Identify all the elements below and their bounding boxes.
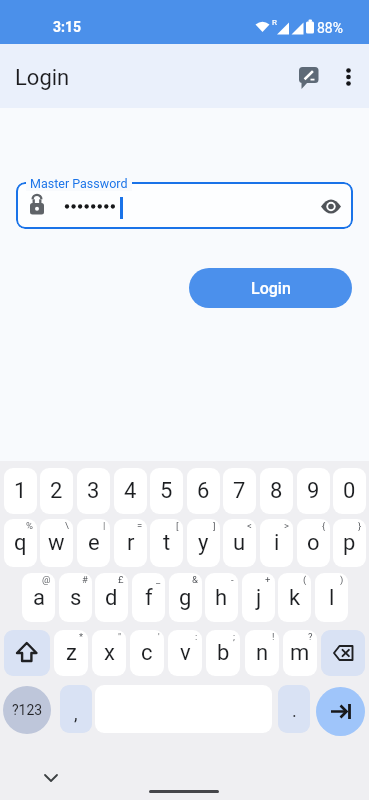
- button[interactable]: r: [114, 519, 147, 567]
- staticText: 3:15: [53, 19, 82, 35]
- button[interactable]: 8: [260, 468, 293, 514]
- button[interactable]: b: [206, 630, 240, 676]
- button[interactable]: w: [40, 519, 73, 567]
- button[interactable]: s: [59, 573, 92, 622]
- button[interactable]: 0: [333, 468, 366, 514]
- button[interactable]: 1: [4, 468, 37, 514]
- staticText: d: [105, 585, 118, 611]
- button[interactable]: p: [333, 519, 366, 567]
- button[interactable]: n: [245, 630, 279, 676]
- staticText: p: [343, 530, 356, 556]
- button[interactable]: v: [168, 630, 202, 676]
- button[interactable]: t: [150, 519, 183, 567]
- button[interactable]: .: [278, 685, 310, 733]
- staticText: R: [272, 18, 277, 27]
- staticText: e: [88, 530, 100, 556]
- staticText: Login: [15, 65, 70, 91]
- button[interactable]: z: [54, 630, 88, 676]
- button[interactable]: h: [205, 573, 238, 622]
- staticText: f: [145, 585, 153, 611]
- button[interactable]: 3: [77, 468, 110, 514]
- button[interactable]: 7: [223, 468, 256, 514]
- button[interactable]: k: [278, 573, 311, 622]
- staticText: 1: [14, 478, 27, 504]
- staticText: 5: [160, 478, 173, 504]
- staticText: ;: [233, 631, 236, 642]
- staticText: t: [163, 530, 171, 556]
- staticText: o: [307, 530, 320, 556]
- staticText: 9: [307, 478, 320, 504]
- button[interactable]: q: [4, 519, 37, 567]
- staticText: x: [104, 640, 115, 666]
- button[interactable]: g: [169, 573, 202, 622]
- staticText: ?: [308, 631, 313, 642]
- button[interactable]: a: [22, 573, 55, 622]
- staticText: ?123: [12, 702, 43, 718]
- staticText: y: [198, 530, 209, 556]
- staticText: m: [290, 640, 310, 666]
- staticText: r: [127, 530, 135, 556]
- staticText: 2: [50, 478, 63, 504]
- button[interactable]: ,: [60, 685, 92, 733]
- staticText: n: [256, 640, 269, 666]
- button[interactable]: [317, 194, 345, 219]
- staticText: 88%: [317, 20, 343, 36]
- button[interactable]: [316, 687, 365, 736]
- button[interactable]: f: [132, 573, 165, 622]
- staticText: @: [42, 574, 51, 585]
- staticText: 0: [343, 478, 356, 504]
- staticText: j: [256, 585, 262, 611]
- staticText: w: [48, 530, 65, 556]
- staticText: 4: [124, 478, 137, 504]
- staticText: -: [231, 574, 234, 585]
- staticText: }: [358, 520, 362, 531]
- staticText: g: [179, 585, 192, 611]
- button[interactable]: 6: [187, 468, 220, 514]
- button[interactable]: [4, 630, 50, 676]
- button[interactable]: 5: [150, 468, 183, 514]
- button[interactable]: [41, 768, 61, 784]
- button[interactable]: y: [187, 519, 220, 567]
- staticText: %: [26, 520, 33, 531]
- button[interactable]: l: [315, 573, 348, 622]
- staticText: z: [66, 640, 77, 666]
- staticText: u: [233, 530, 246, 556]
- staticText: Login: [251, 279, 291, 298]
- staticText: b: [217, 640, 230, 666]
- button[interactable]: m: [283, 630, 317, 676]
- button[interactable]: ?123: [3, 686, 51, 734]
- button[interactable]: 2: [40, 468, 73, 514]
- staticText: +: [265, 574, 271, 585]
- button[interactable]: e: [77, 519, 110, 567]
- staticText: &: [192, 574, 198, 585]
- button[interactable]: x: [92, 630, 126, 676]
- button[interactable]: [16, 182, 353, 229]
- staticText: ]: [213, 520, 216, 531]
- button[interactable]: o: [297, 519, 330, 567]
- button[interactable]: j: [242, 573, 275, 622]
- button[interactable]: u: [223, 519, 256, 567]
- staticText: !: [272, 631, 275, 642]
- button[interactable]: [321, 630, 365, 676]
- staticText: h: [215, 585, 228, 611]
- staticText: [: [176, 520, 179, 531]
- button[interactable]: [294, 61, 324, 91]
- staticText: _: [156, 574, 161, 585]
- staticText: 6: [197, 478, 210, 504]
- staticText: ,: [74, 703, 78, 724]
- button[interactable]: d: [95, 573, 128, 622]
- staticText: =: [137, 520, 143, 531]
- button[interactable]: Login: [189, 268, 352, 308]
- staticText: *: [79, 631, 84, 642]
- staticText: a: [33, 585, 45, 611]
- button[interactable]: 4: [114, 468, 147, 514]
- button[interactable]: [338, 62, 359, 90]
- button[interactable]: c: [130, 630, 164, 676]
- staticText: >: [284, 520, 289, 531]
- staticText: c: [141, 640, 153, 666]
- button[interactable]: 9: [297, 468, 330, 514]
- staticText: <: [247, 520, 252, 531]
- staticText: ": [118, 631, 122, 642]
- button[interactable]: i: [260, 519, 293, 567]
